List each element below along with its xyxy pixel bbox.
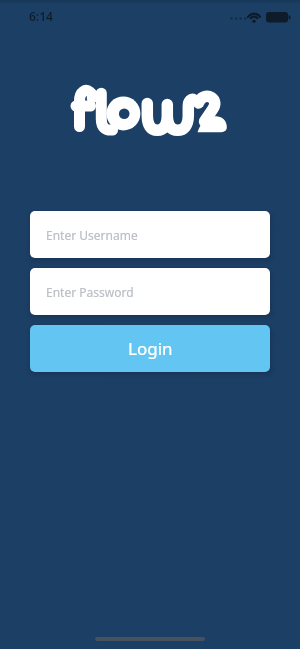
staticText: Enter Password [46,284,134,300]
button[interactable]: Login [30,325,270,372]
staticText: Login [128,337,173,360]
staticText: Enter Username [46,227,138,243]
button[interactable]: Enter Username [30,211,270,258]
staticText: 6:14 [29,8,53,24]
button[interactable]: Enter Password [30,268,270,315]
